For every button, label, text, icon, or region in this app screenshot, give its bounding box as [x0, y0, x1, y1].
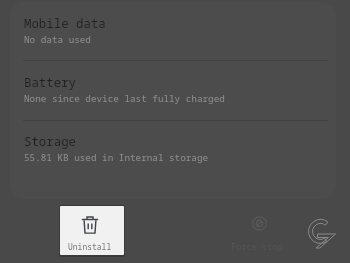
staticText: None since device last fully charged: [24, 92, 225, 105]
staticText: Storage: [24, 133, 77, 150]
staticText: Battery: [24, 74, 77, 91]
other: Logo: [308, 217, 338, 249]
staticText: 55.81 KB used in Internal storage: [24, 151, 209, 164]
button[interactable]: Storage: [0, 122, 350, 180]
button[interactable]: Mobile data: [0, 4, 350, 62]
staticText: Uninstall: [68, 241, 112, 252]
staticText: Mobile data: [24, 15, 106, 32]
other: Uninstall: [82, 216, 98, 234]
button[interactable]: Battery: [0, 63, 350, 121]
other: Force stop: [252, 216, 267, 231]
button[interactable]: Uninstall: [60, 206, 124, 255]
staticText: No data used: [24, 33, 91, 46]
